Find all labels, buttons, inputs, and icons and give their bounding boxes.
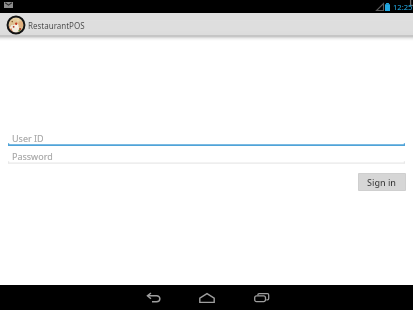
button[interactable]: Home: [180, 285, 234, 310]
button[interactable]: Recent apps: [234, 285, 288, 310]
staticText: User ID: [12, 132, 44, 144]
staticText: Password: [12, 150, 53, 162]
button[interactable]: Sign in: [358, 173, 406, 191]
staticText: RestaurantPOS: [28, 20, 85, 31]
staticText: 12:25: [393, 2, 413, 12]
button[interactable]: Back: [126, 285, 180, 310]
staticText: Sign in: [367, 176, 397, 188]
